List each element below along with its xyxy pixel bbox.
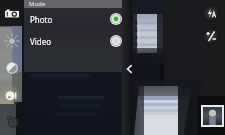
button[interactable]: Collapse panel <box>122 0 134 135</box>
staticText: Video <box>30 36 52 47</box>
button[interactable]: Exposure compensation <box>202 27 220 45</box>
button[interactable]: Scene mode <box>0 82 23 108</box>
button[interactable]: Settings <box>0 108 23 134</box>
button[interactable]: Video <box>24 30 127 52</box>
button[interactable]: Photo <box>24 8 127 30</box>
button[interactable]: Brightness <box>0 28 23 54</box>
staticText: Photo <box>30 14 53 25</box>
staticText: Mode <box>29 0 46 7</box>
button[interactable]: White balance <box>0 55 23 81</box>
button[interactable]: Flash auto <box>202 4 220 22</box>
button[interactable]: Last photo <box>203 107 222 125</box>
button[interactable]: Camera mode <box>0 1 23 27</box>
